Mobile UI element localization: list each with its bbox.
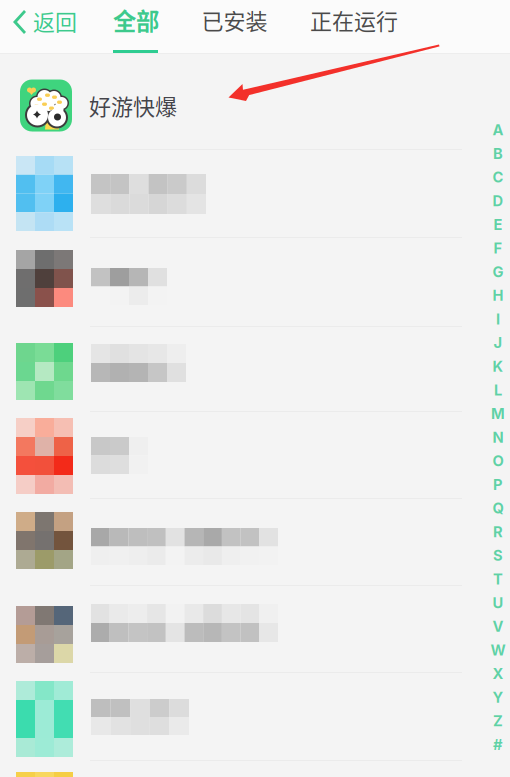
staticText: Z (493, 712, 503, 730)
button[interactable]: 已安装 (203, 0, 266, 44)
staticText: 正在运行 (310, 4, 398, 36)
staticText: 返回 (33, 5, 77, 37)
staticText: C (492, 168, 503, 186)
button[interactable]: 返回 (13, 0, 79, 50)
staticText: # (493, 736, 503, 753)
staticText: M (491, 405, 505, 422)
staticText: H (492, 287, 503, 304)
staticText: N (492, 428, 503, 446)
staticText: D (492, 192, 503, 210)
staticText: J (493, 334, 502, 352)
staticText: A (492, 121, 503, 139)
staticText: 全部 (113, 3, 159, 37)
staticText: I (496, 310, 500, 328)
button[interactable]: 全部 (113, 0, 158, 53)
staticText: W (490, 641, 505, 659)
staticText: S (493, 547, 503, 564)
staticText: O (492, 452, 503, 470)
staticText: R (493, 523, 503, 541)
staticText: K (492, 357, 503, 375)
staticText: X (492, 665, 503, 682)
staticText: V (492, 618, 503, 635)
button[interactable]: 好游快爆 (0, 62, 460, 149)
staticText: G (492, 263, 503, 281)
button[interactable]: 正在运行 (310, 0, 398, 44)
staticText: L (494, 381, 502, 399)
staticText: 好游快爆 (89, 90, 177, 121)
staticText: Y (492, 688, 503, 706)
staticText: P (493, 476, 503, 493)
staticText: 已安装 (201, 4, 267, 36)
staticText: E (493, 216, 502, 233)
staticText: T (493, 570, 503, 588)
staticText: Q (492, 499, 503, 517)
staticText: B (493, 145, 503, 162)
staticText: U (492, 594, 503, 612)
staticText: F (493, 239, 502, 257)
button[interactable]: Alphabet index (0, 0, 510, 777)
